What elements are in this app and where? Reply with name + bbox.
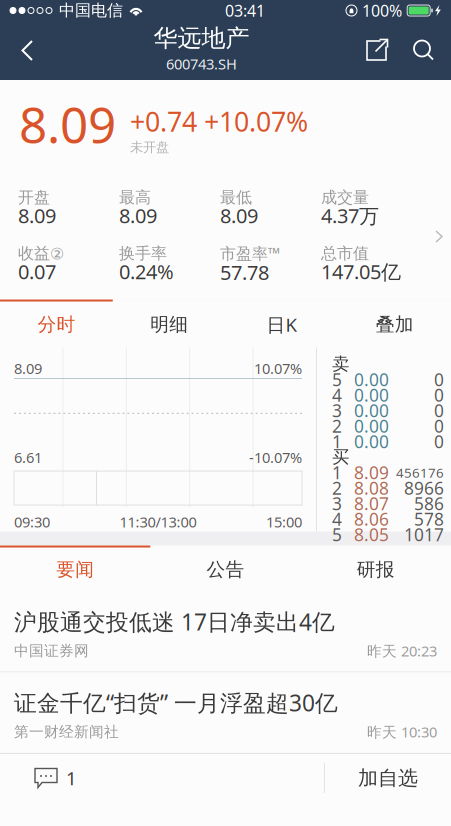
staticText: 4 xyxy=(332,383,342,406)
button[interactable]: 研报 xyxy=(301,545,451,591)
button[interactable]: Back xyxy=(4,25,50,75)
staticText: 2 xyxy=(332,476,342,499)
staticText: 开盘 xyxy=(18,187,50,207)
staticText: 3 xyxy=(332,492,342,515)
button[interactable]: 加自选 xyxy=(325,754,451,802)
staticText: 成交量 xyxy=(321,187,369,207)
button[interactable]: 1 xyxy=(0,754,324,802)
staticText: 10.07% xyxy=(254,358,302,378)
staticText: 0.00 xyxy=(354,368,389,391)
staticText: 8.09 xyxy=(18,202,56,229)
button[interactable]: Search xyxy=(401,21,447,79)
staticText: 明细 xyxy=(150,313,188,336)
staticText: 最低 xyxy=(220,187,252,207)
staticText: 8.09 xyxy=(354,461,389,484)
staticText: 日K xyxy=(266,312,297,337)
staticText: 600743.SH xyxy=(166,54,237,73)
staticText: 1 xyxy=(332,430,342,453)
button[interactable]: 叠加 xyxy=(338,299,451,347)
staticText: 8.09 xyxy=(14,358,42,378)
staticText: 0.00 xyxy=(354,414,389,437)
staticText: 15:00 xyxy=(266,512,302,532)
staticText: 0.07 xyxy=(18,258,56,285)
staticText: 03:41 xyxy=(225,0,265,21)
staticText: 总市值 xyxy=(321,243,369,263)
staticText: 578 xyxy=(414,507,444,530)
staticText: 5 xyxy=(332,523,342,546)
staticText: 4.37万 xyxy=(321,202,379,229)
button[interactable]: 沪股通交投低迷 17日净卖出4亿 xyxy=(0,591,451,671)
staticText: 1 xyxy=(332,461,342,484)
button[interactable]: 明细 xyxy=(113,299,226,347)
staticText: 华远地产 xyxy=(153,23,249,53)
staticText: 昨天 20:23 xyxy=(367,641,437,661)
staticText: 叠加 xyxy=(376,313,414,336)
staticText: 最高 xyxy=(119,187,151,207)
staticText: 0 xyxy=(434,430,444,453)
staticText: 1 xyxy=(66,766,77,790)
staticText: 0.24% xyxy=(119,258,174,285)
staticText: 4 xyxy=(332,507,342,530)
staticText: 8.05 xyxy=(354,523,389,546)
staticText: 收益② xyxy=(18,243,64,263)
staticText: 证金千亿“扫货” 一月浮盈超30亿 xyxy=(14,687,338,718)
staticText: 市盈率™ xyxy=(220,243,280,264)
button[interactable]: 日K xyxy=(225,299,338,347)
staticText: 8966 xyxy=(404,476,444,499)
staticText: 0 xyxy=(434,399,444,422)
button[interactable]: 公告 xyxy=(150,545,301,591)
staticText: 0.00 xyxy=(354,399,389,422)
staticText: 8.09 xyxy=(119,202,157,229)
staticText: 中国电信 xyxy=(59,1,123,20)
staticText: 昨天 10:30 xyxy=(367,722,437,742)
staticText: 5 xyxy=(332,368,342,391)
staticText: 研报 xyxy=(357,558,395,581)
staticText: 456176 xyxy=(396,464,444,481)
staticText: 公告 xyxy=(206,558,244,581)
staticText: 加自选 xyxy=(358,766,418,790)
staticText: 1017 xyxy=(404,523,444,546)
button[interactable]: Share xyxy=(353,21,401,79)
staticText: 0 xyxy=(434,383,444,406)
staticText: 分时 xyxy=(37,313,75,336)
staticText: 卖 xyxy=(332,353,349,375)
staticText: 8.09 xyxy=(19,91,116,156)
staticText: 沪股通交投低迷 17日净卖出4亿 xyxy=(14,606,335,637)
staticText: 2 xyxy=(332,414,342,437)
staticText: 100% xyxy=(362,0,402,21)
staticText: 8.08 xyxy=(354,476,389,499)
staticText: 8.09 xyxy=(220,202,258,229)
staticText: 3 xyxy=(332,399,342,422)
staticText: 57.78 xyxy=(220,259,269,286)
staticText: 0.00 xyxy=(354,430,389,453)
staticText: 中国证券网 xyxy=(14,642,89,660)
staticText: 买 xyxy=(332,446,349,468)
staticText: 09:30 xyxy=(14,512,50,532)
staticText: 未开盘 xyxy=(130,139,169,155)
staticText: 147.05亿 xyxy=(321,258,401,285)
staticText: 0.00 xyxy=(354,383,389,406)
button[interactable]: 分时 xyxy=(0,299,113,347)
staticText: 6.61 xyxy=(14,448,42,467)
staticText: -10.07% xyxy=(249,448,302,467)
staticText: 8.06 xyxy=(354,507,389,530)
button[interactable]: 证金千亿“扫货” 一月浮盈超30亿 xyxy=(0,672,451,752)
staticText: 8.07 xyxy=(354,492,389,515)
staticText: 586 xyxy=(414,492,444,515)
staticText: +0.74 +10.07% xyxy=(130,104,308,139)
staticText: 第一财经新闻社 xyxy=(14,723,119,741)
button[interactable]: 要闻 xyxy=(0,545,150,591)
staticText: 要闻 xyxy=(56,558,94,581)
staticText: 0 xyxy=(434,414,444,437)
staticText: 0 xyxy=(434,368,444,391)
staticText: 11:30/13:00 xyxy=(119,512,196,532)
staticText: 换手率 xyxy=(119,243,167,263)
